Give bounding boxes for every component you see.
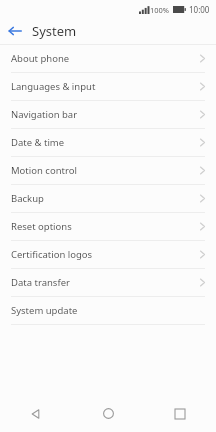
staticText: 100% <box>150 5 170 15</box>
button[interactable]: Backup <box>0 185 216 213</box>
staticText: About phone <box>11 52 70 65</box>
staticText: Reset options <box>11 220 72 233</box>
staticText: System <box>32 22 77 40</box>
button[interactable]: System update <box>0 297 216 325</box>
staticText: System update <box>11 304 78 317</box>
staticText: Languages & input <box>11 80 96 93</box>
staticText: Certification logos <box>11 248 93 261</box>
button[interactable]: Date & time <box>0 129 216 157</box>
staticText: Data transfer <box>11 276 70 289</box>
button[interactable]: Languages & input <box>0 73 216 101</box>
button[interactable]: Back <box>0 395 72 432</box>
button[interactable]: About phone <box>0 45 216 73</box>
button[interactable]: Data transfer <box>0 269 216 297</box>
button[interactable]: Motion control <box>0 157 216 185</box>
button[interactable]: Back <box>0 18 30 44</box>
staticText: 10:00 <box>189 4 210 15</box>
button[interactable]: Navigation bar <box>0 101 216 129</box>
staticText: Motion control <box>11 164 77 177</box>
button[interactable]: Reset options <box>0 213 216 241</box>
staticText: Navigation bar <box>11 108 78 121</box>
button[interactable]: Certification logos <box>0 241 216 269</box>
button[interactable]: Recent apps <box>144 395 216 432</box>
staticText: Date & time <box>11 136 65 149</box>
staticText: Backup <box>11 192 44 205</box>
button[interactable]: Home <box>72 395 144 432</box>
